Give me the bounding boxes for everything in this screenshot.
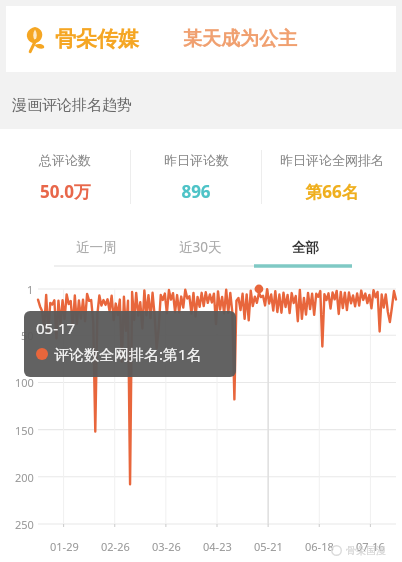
button[interactable]: 近一周 [44, 225, 148, 269]
staticText: 896 [181, 180, 211, 203]
staticText: 漫画评论排名趋势 [12, 96, 132, 115]
staticText: 50 [21, 328, 34, 343]
staticText: 第66名 [305, 180, 359, 203]
staticText: 01-29 [50, 539, 79, 554]
staticText: 200 [15, 470, 34, 485]
staticText: 总评论数 [39, 152, 91, 168]
button[interactable]: 近30天 [148, 225, 253, 269]
staticText: 近一周 [76, 239, 117, 256]
staticText: 150 [15, 423, 34, 438]
button[interactable]: 总评论数 [0, 129, 130, 225]
staticText: 07-16 [356, 539, 385, 554]
staticText: 昨日评论数 [164, 152, 229, 168]
staticText: 评论数全网排名:第1名 [54, 344, 202, 364]
staticText: 02-26 [101, 539, 130, 554]
staticText: 100 [15, 375, 34, 390]
staticText: 50.0万 [40, 180, 91, 203]
staticText: 04-23 [203, 539, 232, 554]
staticText: 1 [27, 282, 34, 297]
staticText: 骨朵国漫 [346, 544, 386, 557]
staticText: 近30天 [179, 238, 222, 256]
staticText: 06-18 [305, 539, 334, 554]
staticText: 全部 [292, 239, 319, 256]
button[interactable]: 昨日评论全网排名 [262, 129, 402, 225]
button[interactable]: 骨朵传媒 [6, 6, 396, 72]
staticText: 某天成为公主 [183, 27, 297, 51]
staticText: 骨朵传媒 [55, 26, 139, 52]
staticText: 昨日评论全网排名 [280, 152, 384, 168]
staticText: 03-26 [152, 539, 181, 554]
button[interactable]: 全部 [253, 225, 358, 269]
button[interactable]: 数据提示 [24, 311, 236, 377]
staticText: 250 [15, 517, 34, 532]
staticText: 05-17 [36, 318, 76, 338]
staticText: 05-21 [254, 539, 283, 554]
button[interactable]: 昨日评论数 [131, 129, 261, 225]
